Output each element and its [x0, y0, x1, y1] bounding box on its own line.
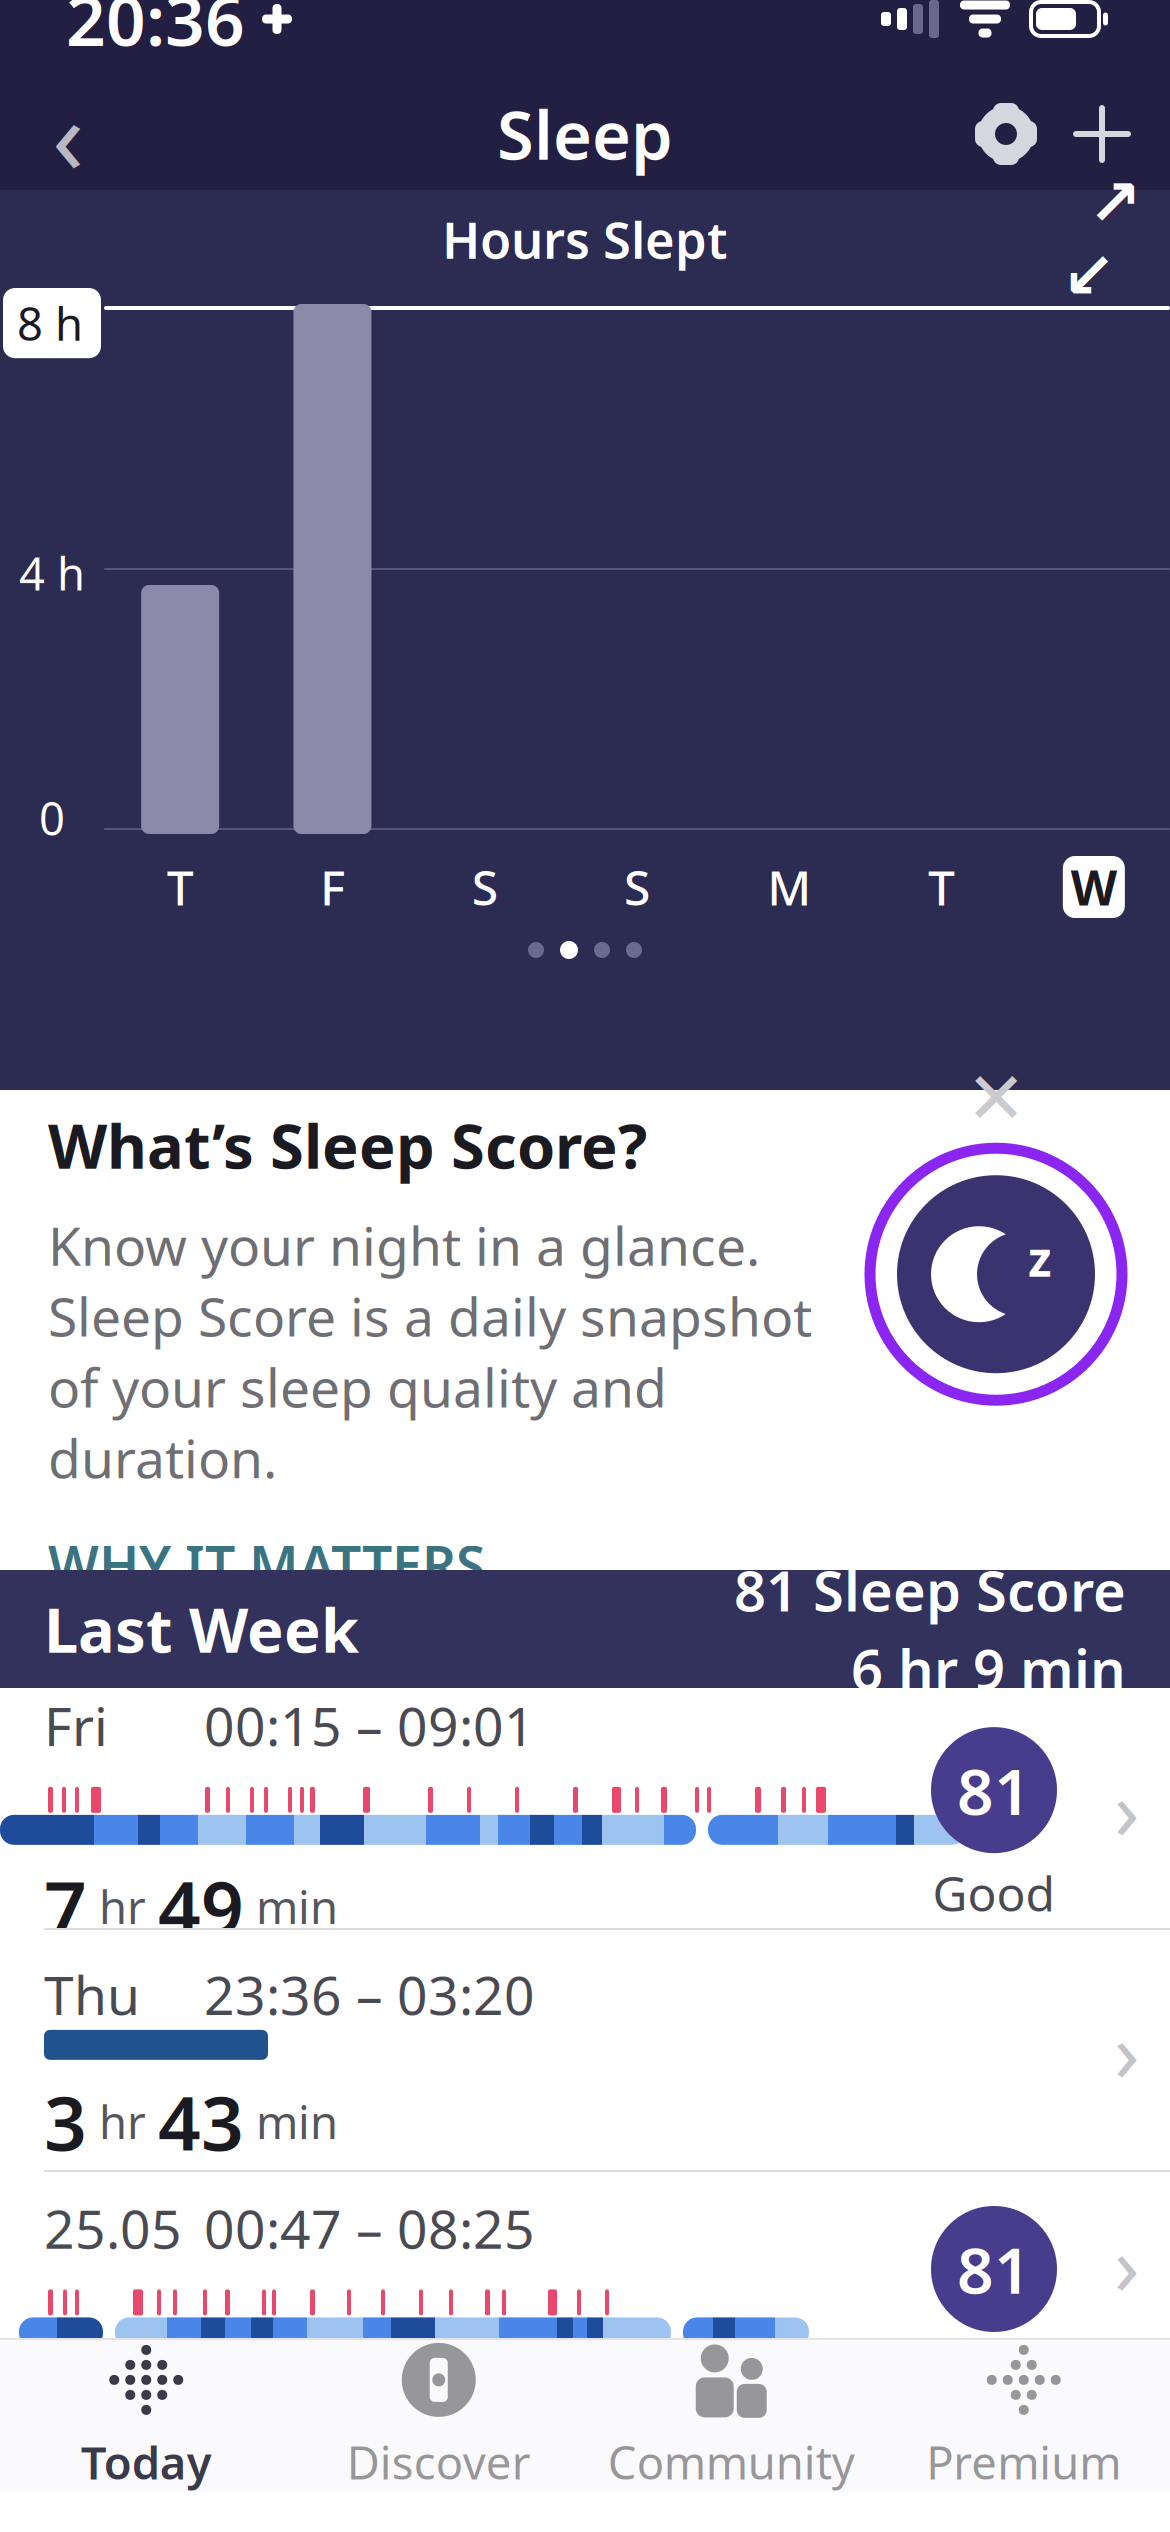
- staticText: 7: [44, 1857, 87, 1956]
- staticText: 43: [158, 2072, 244, 2171]
- staticText: Know your night in a glance. Sleep Score…: [48, 1210, 812, 1493]
- button[interactable]: Discover: [292, 2340, 585, 2492]
- button[interactable]: Community: [585, 2340, 877, 2492]
- button[interactable]: 25.05: [0, 2172, 1170, 2338]
- staticText: ›: [1114, 1753, 1140, 1863]
- staticText: W: [1071, 855, 1117, 919]
- staticText: 49: [158, 1857, 244, 1956]
- button[interactable]: WHY IT MATTERS: [48, 1519, 485, 1610]
- staticText: hr: [87, 2091, 158, 2151]
- staticText: Today: [81, 2432, 212, 2492]
- staticText: S: [624, 855, 650, 919]
- staticText: Good: [932, 1861, 1055, 1925]
- button[interactable]: Premium: [877, 2340, 1170, 2492]
- staticText: 23:36 – 03:20: [204, 1959, 535, 2030]
- staticText: M: [767, 855, 811, 919]
- staticText: F: [320, 855, 345, 919]
- staticText: 81 Sleep Score: [734, 1553, 1126, 1627]
- staticText: z: [1028, 1226, 1052, 1290]
- staticText: 81: [957, 2226, 1031, 2311]
- staticText: ›: [1114, 2208, 1140, 2318]
- button[interactable]: Settings: [958, 86, 1054, 182]
- button[interactable]: Today: [0, 2340, 292, 2492]
- button[interactable]: Expand chart: [1060, 201, 1144, 277]
- staticText: Premium: [926, 2432, 1121, 2492]
- button[interactable]: Add sleep entry: [1054, 86, 1150, 182]
- staticText: ↙: [1062, 239, 1116, 312]
- staticText: 81: [957, 1748, 1031, 1833]
- staticText: 8 h: [17, 293, 83, 353]
- staticText: min: [244, 2091, 338, 2151]
- staticText: ↗: [1088, 166, 1142, 239]
- button[interactable]: Close: [948, 1050, 1044, 1146]
- staticText: Thu: [44, 1959, 140, 2030]
- staticText: ✕: [966, 1057, 1026, 1139]
- staticText: hr: [87, 1876, 158, 1936]
- staticText: Sleep: [497, 90, 673, 178]
- staticText: What’s Sleep Score?: [48, 1104, 647, 1186]
- button[interactable]: Back: [20, 86, 116, 182]
- button[interactable]: Thu: [0, 1930, 1170, 2170]
- staticText: ‹: [52, 65, 84, 203]
- staticText: 0: [39, 788, 65, 848]
- staticText: 6 hr 9 min: [851, 1631, 1126, 1705]
- staticText: T: [928, 855, 955, 919]
- staticText: 00:15 – 09:01: [204, 1690, 535, 1761]
- staticText: Hours Slept: [442, 205, 728, 273]
- staticText: 20:36: [66, 0, 245, 65]
- staticText: S: [472, 855, 498, 919]
- staticText: ›: [1114, 1995, 1140, 2105]
- staticText: T: [167, 855, 194, 919]
- staticText: 00:47 – 08:25: [204, 2193, 535, 2263]
- staticText: WHY IT MATTERS: [48, 1529, 485, 1600]
- button[interactable]: Fri: [0, 1688, 1170, 1928]
- staticText: Fri: [44, 1690, 108, 1761]
- staticText: Last Week: [44, 1588, 359, 1670]
- staticText: 3: [44, 2072, 87, 2171]
- staticText: Community: [608, 2432, 855, 2492]
- staticText: Discover: [347, 2432, 531, 2492]
- staticText: min: [244, 1876, 338, 1936]
- staticText: 25.05: [44, 2193, 182, 2263]
- staticText: 4 h: [19, 543, 85, 603]
